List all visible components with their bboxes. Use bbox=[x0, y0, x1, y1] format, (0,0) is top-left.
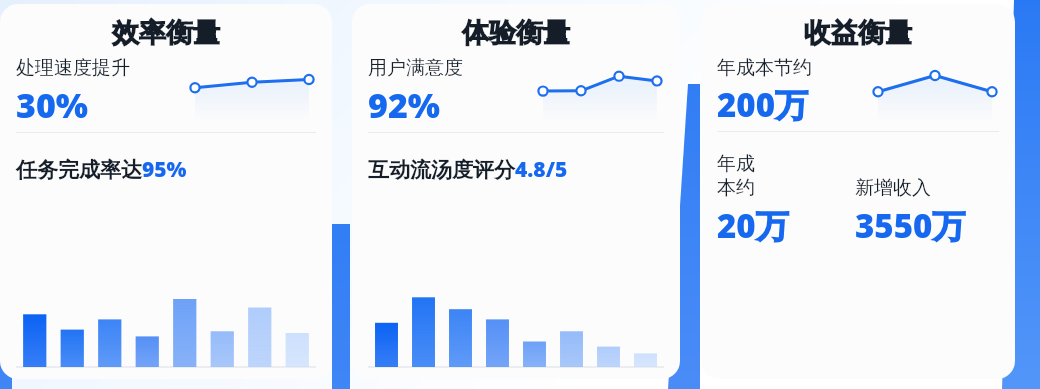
staticText: 互动流汤度评分4.8/5 bbox=[368, 155, 568, 184]
staticText: 3550万 bbox=[855, 203, 966, 248]
staticText: 处理速度提升 bbox=[16, 56, 130, 80]
staticText: 体验衡量 bbox=[368, 16, 664, 50]
staticText: 20万 bbox=[717, 203, 789, 248]
staticText: 200万 bbox=[717, 82, 809, 127]
button[interactable]: 收益衡量 bbox=[701, 4, 1015, 379]
button[interactable]: 效率衡量 bbox=[0, 4, 332, 379]
staticText: 92% bbox=[368, 82, 441, 128]
staticText: 新增收入 bbox=[855, 176, 931, 200]
staticText: 年成 本约 bbox=[717, 152, 755, 200]
staticText: 收益衡量 bbox=[717, 16, 999, 50]
staticText: 任务完成率达95% bbox=[16, 155, 187, 184]
staticText: 年成本节约 bbox=[717, 56, 812, 80]
staticText: 用户满意度 bbox=[368, 56, 463, 80]
button[interactable]: 体验衡量 bbox=[352, 4, 680, 379]
staticText: 30% bbox=[16, 82, 89, 128]
staticText: 效率衡量 bbox=[16, 16, 316, 50]
